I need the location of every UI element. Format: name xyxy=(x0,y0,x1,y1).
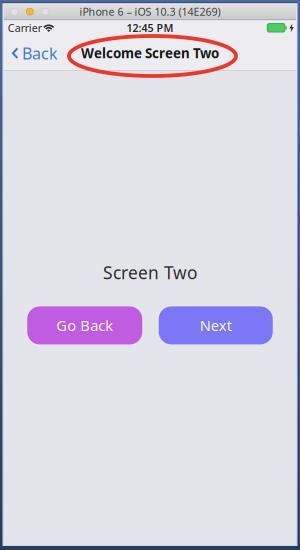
staticText: Welcome Screen Two xyxy=(81,44,219,62)
button[interactable]: Back xyxy=(4,35,66,71)
staticText: 12:45 PM xyxy=(126,21,173,35)
button[interactable]: Go Back xyxy=(27,306,142,344)
staticText: Back xyxy=(22,43,58,64)
staticText: Carrier xyxy=(8,21,42,35)
staticText: Go Back xyxy=(56,316,113,335)
staticText: Screen Two xyxy=(103,261,197,284)
staticText: Next xyxy=(200,316,232,335)
button[interactable]: Next xyxy=(159,306,273,344)
staticText: iPhone 6 – iOS 10.3 (14E269) xyxy=(79,4,220,19)
